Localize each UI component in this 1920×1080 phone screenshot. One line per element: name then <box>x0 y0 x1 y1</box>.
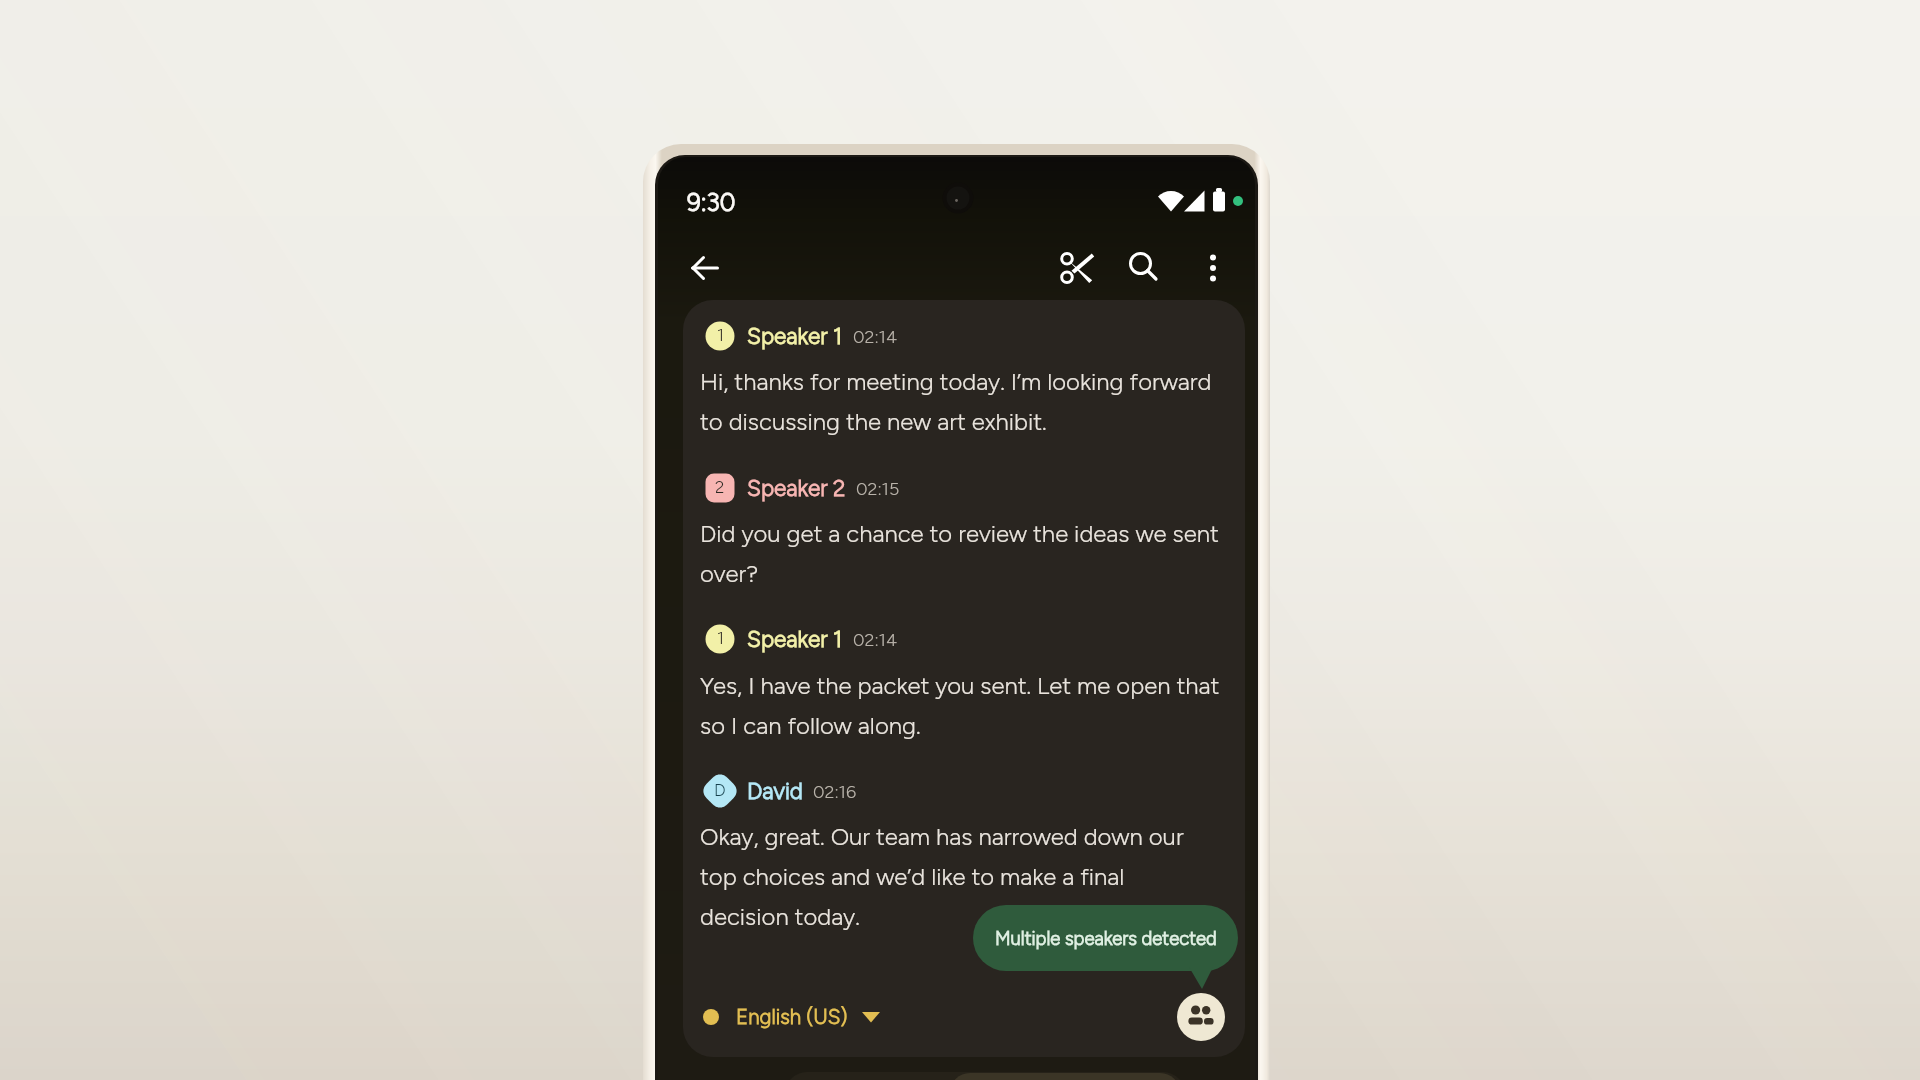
button[interactable]: 2 <box>703 470 900 506</box>
staticText: decision today. <box>700 902 860 931</box>
staticText: 1 <box>717 325 724 345</box>
staticText: Speaker 1 <box>747 626 843 653</box>
button[interactable]: English (US) <box>699 996 880 1038</box>
button[interactable]: Search <box>1120 244 1168 292</box>
staticText: Did you get a chance to review the ideas… <box>700 519 1219 548</box>
staticText: 9:30 <box>687 188 736 217</box>
button[interactable]: 1 <box>703 318 898 354</box>
staticText: D <box>714 780 726 800</box>
staticText: 02:15 <box>856 478 900 500</box>
staticText: top choices and we’d like to make a fina… <box>700 862 1125 891</box>
button[interactable]: Recording controls <box>785 1072 1185 1080</box>
staticText: to discussing the new art exhibit. <box>700 407 1047 436</box>
staticText: 1 <box>717 628 724 648</box>
button[interactable]: Pause recording <box>950 1073 1180 1080</box>
staticText: 02:16 <box>813 781 857 803</box>
staticText: over? <box>700 559 759 588</box>
button[interactable]: Speakers <box>1177 993 1225 1041</box>
staticText: Multiple speakers detected <box>995 927 1217 949</box>
staticText: Okay, great. Our team has narrowed down … <box>700 822 1184 851</box>
staticText: Speaker 2 <box>747 475 846 502</box>
button[interactable]: Back <box>681 244 729 292</box>
staticText: Speaker 1 <box>747 323 843 350</box>
staticText: Hi, thanks for meeting today. I’m lookin… <box>700 367 1212 396</box>
staticText: 02:14 <box>853 326 898 348</box>
button[interactable]: 1 <box>703 621 898 657</box>
staticText: 02:14 <box>853 629 898 651</box>
button[interactable]: More options <box>1189 244 1237 292</box>
staticText: 2 <box>715 477 725 497</box>
staticText: so I can follow along. <box>700 711 921 740</box>
staticText: David <box>747 778 803 805</box>
staticText: English (US) <box>736 1005 848 1030</box>
button[interactable]: Trim <box>1052 244 1100 292</box>
staticText: Yes, I have the packet you sent. Let me … <box>700 671 1220 700</box>
button[interactable]: D <box>703 773 857 809</box>
